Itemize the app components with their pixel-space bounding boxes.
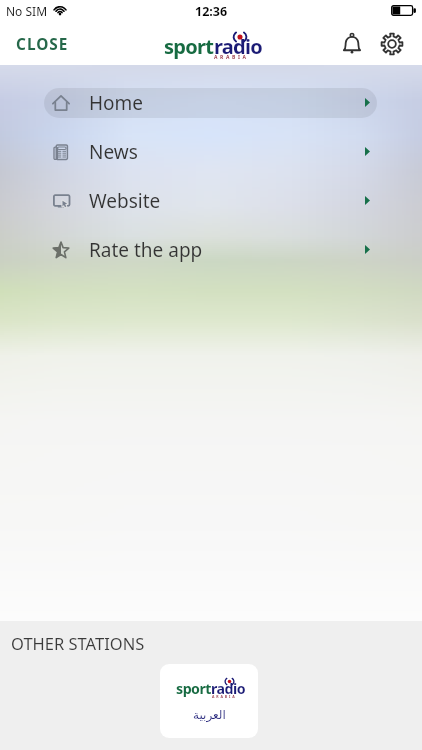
- staticText: العربية: [193, 708, 226, 722]
- button[interactable]: Notifications: [332, 24, 372, 64]
- staticText: sport: [176, 679, 211, 698]
- staticText: News: [89, 139, 138, 165]
- staticText: CLOSE: [16, 34, 69, 55]
- button[interactable]: Settings: [372, 24, 412, 64]
- staticText: sport: [164, 33, 214, 60]
- button[interactable]: Rate the app: [0, 225, 422, 274]
- staticText: OTHER STATIONS: [11, 632, 145, 654]
- staticText: ARABIA: [214, 54, 249, 61]
- staticText: Home: [89, 90, 144, 116]
- staticText: No SIM: [6, 3, 48, 19]
- button[interactable]: sport: [160, 664, 258, 738]
- staticText: radio: [211, 679, 246, 698]
- staticText: Website: [89, 188, 161, 214]
- staticText: ARABIA: [212, 694, 237, 699]
- staticText: Rate the app: [89, 237, 203, 263]
- button[interactable]: News: [0, 127, 422, 176]
- staticText: radio: [214, 33, 263, 60]
- button[interactable]: CLOSE: [0, 25, 81, 62]
- staticText: 12:36: [195, 3, 228, 20]
- button[interactable]: Home: [0, 78, 422, 127]
- button[interactable]: Website: [0, 176, 422, 225]
